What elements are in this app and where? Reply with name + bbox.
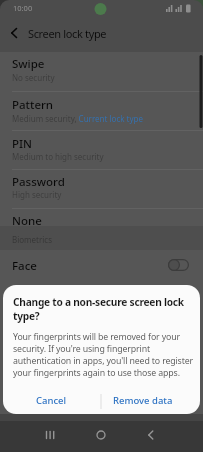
- staticText: PIN: [12, 136, 33, 152]
- button[interactable]: PIN: [0, 131, 203, 170]
- staticText: Password: [12, 174, 65, 190]
- staticText: None: [12, 213, 42, 229]
- staticText: authentication in apps, you'll need to r…: [13, 355, 194, 367]
- button[interactable]: [35, 421, 67, 452]
- staticText: Change to a non-secure screen lock: [13, 295, 184, 309]
- button[interactable]: Password: [0, 170, 203, 209]
- staticText: Cancel: [36, 394, 67, 407]
- button[interactable]: Remove data: [99, 388, 187, 412]
- staticText: Biometrics: [12, 234, 53, 245]
- staticText: security. If you're using fingerprint: [13, 343, 150, 355]
- staticText: No security: [12, 72, 55, 83]
- button[interactable]: Pattern: [0, 92, 203, 131]
- staticText: type?: [13, 309, 40, 323]
- button[interactable]: [4, 23, 24, 43]
- staticText: Face: [12, 258, 37, 274]
- staticText: Medium security, Current lock type: [12, 113, 143, 124]
- staticText: Medium to high security: [12, 151, 104, 162]
- staticText: your fingerprints again to use those app…: [13, 367, 180, 379]
- button[interactable]: Swipe: [0, 52, 203, 92]
- button[interactable]: None: [0, 209, 203, 228]
- button[interactable]: Face: [0, 248, 203, 285]
- staticText: Screen lock type: [28, 26, 107, 41]
- button[interactable]: [135, 421, 167, 452]
- button[interactable]: [85, 421, 117, 452]
- button[interactable]: Cancel: [7, 388, 95, 412]
- staticText: Swipe: [12, 56, 45, 72]
- staticText: Remove data: [113, 394, 173, 407]
- staticText: Pattern: [12, 97, 54, 113]
- staticText: Your fingerprints will be removed for yo…: [13, 331, 180, 343]
- staticText: High security: [12, 189, 62, 200]
- staticText: 10:00: [13, 3, 33, 13]
